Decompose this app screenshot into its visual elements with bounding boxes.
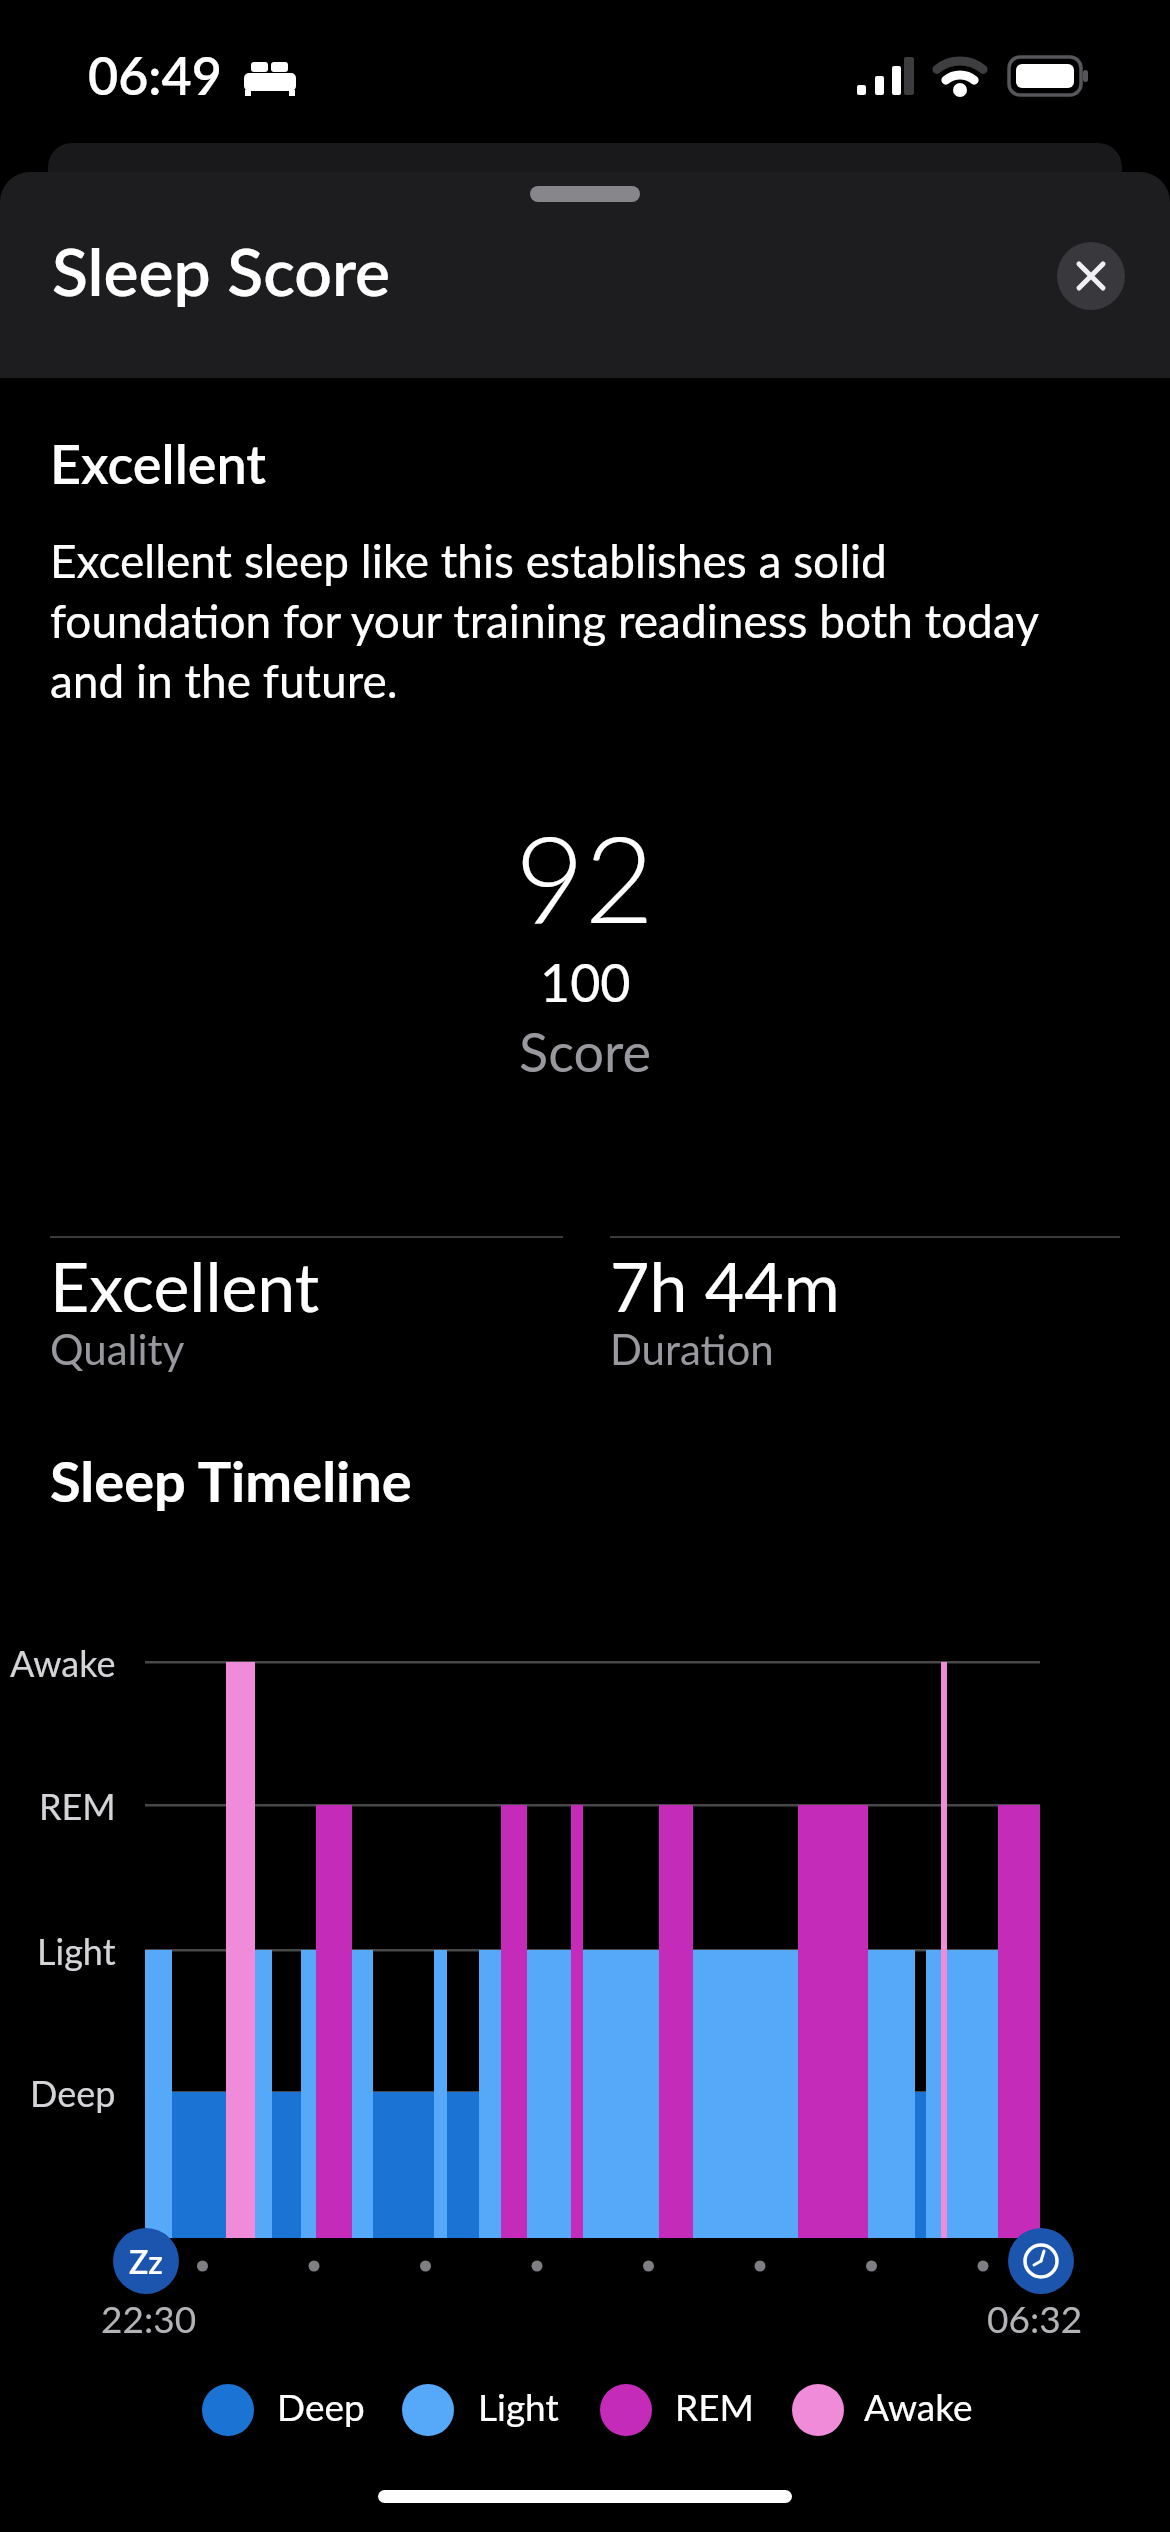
staticText: Duration (610, 1324, 774, 1374)
staticText: Score (519, 1019, 652, 1084)
staticText: Excellent sleep like this establishes a … (50, 533, 1039, 708)
staticText: 06:32 (987, 2296, 1083, 2340)
button[interactable]: Zz (113, 2228, 179, 2294)
staticText: 22:30 (101, 2296, 197, 2340)
staticText: Excellent (50, 431, 267, 496)
staticText: Quality (50, 1324, 185, 1374)
staticText: Sleep Timeline (50, 1447, 412, 1514)
staticText: Light (37, 1929, 116, 1972)
staticText: 92 (515, 805, 655, 949)
staticText: Light (478, 2384, 559, 2428)
staticText: Zz (129, 2242, 163, 2280)
staticText: Awake (10, 1641, 116, 1684)
staticText: 7h 44m (610, 1245, 840, 1327)
staticText: Sleep Score (52, 231, 391, 310)
staticText: 06:49 (88, 44, 222, 106)
button[interactable] (1057, 242, 1125, 310)
staticText: Deep (277, 2384, 365, 2428)
staticText: REM (675, 2384, 754, 2428)
staticText: Deep (30, 2071, 116, 2114)
staticText: 100 (540, 951, 631, 1013)
button[interactable] (1008, 2228, 1074, 2294)
staticText: REM (39, 1784, 116, 1827)
staticText: Excellent (50, 1245, 320, 1327)
staticText: Awake (864, 2384, 973, 2428)
